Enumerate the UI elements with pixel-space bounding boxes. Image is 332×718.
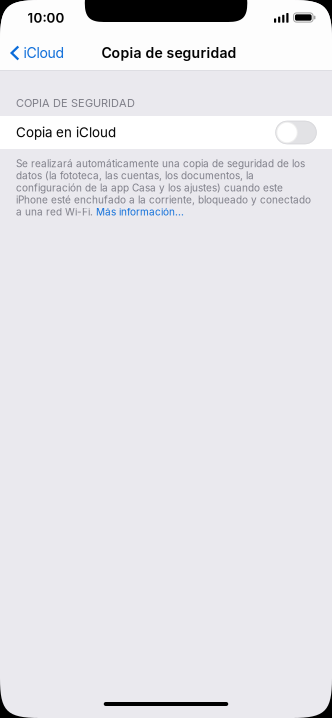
staticText: Copia en iCloud <box>16 124 116 140</box>
staticText: iCloud <box>23 44 64 61</box>
button[interactable]: iCloud <box>0 35 76 71</box>
staticText: Copia de seguridad <box>101 44 236 61</box>
staticText: 10:00 <box>27 10 64 26</box>
button[interactable]: Copia en iCloud <box>0 116 332 149</box>
staticText: COPIA DE SEGURIDAD <box>16 96 135 110</box>
staticText: Se realizará automáticamente una copia d… <box>16 157 311 218</box>
